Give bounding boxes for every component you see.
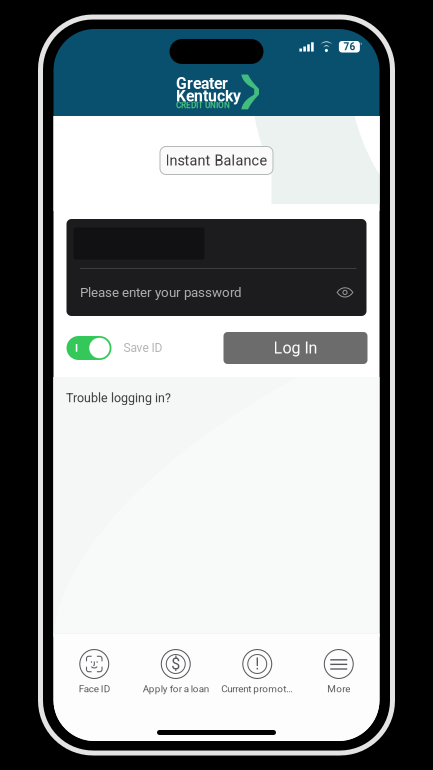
staticText: I [75, 342, 78, 354]
staticText: Trouble logging in? [66, 391, 171, 405]
staticText: ! [255, 655, 259, 673]
button[interactable]: More [298, 633, 379, 705]
button[interactable]: Log In [223, 332, 367, 364]
staticText: Face ID [79, 683, 110, 695]
button[interactable]: I [66, 336, 111, 360]
button[interactable]: $ [135, 633, 216, 705]
staticText: More [327, 683, 350, 695]
button[interactable]: Face ID [53, 633, 135, 705]
staticText: 76 [343, 41, 355, 53]
staticText: Current promot… [221, 683, 293, 695]
button[interactable]: Trouble logging in? [66, 391, 171, 405]
staticText: $ [171, 655, 180, 673]
staticText: Log In [273, 339, 317, 357]
staticText: Instant Balance [165, 152, 267, 169]
button[interactable]: Instant Balance [159, 146, 273, 175]
staticText: Kentucky [176, 87, 241, 105]
staticText: Please enter your password [80, 285, 242, 300]
button[interactable]: ! [216, 633, 298, 705]
staticText: Save ID [123, 341, 162, 355]
staticText: CREDIT UNION [176, 100, 230, 110]
staticText: Apply for a loan [143, 683, 209, 695]
staticText: Greater [176, 74, 228, 93]
